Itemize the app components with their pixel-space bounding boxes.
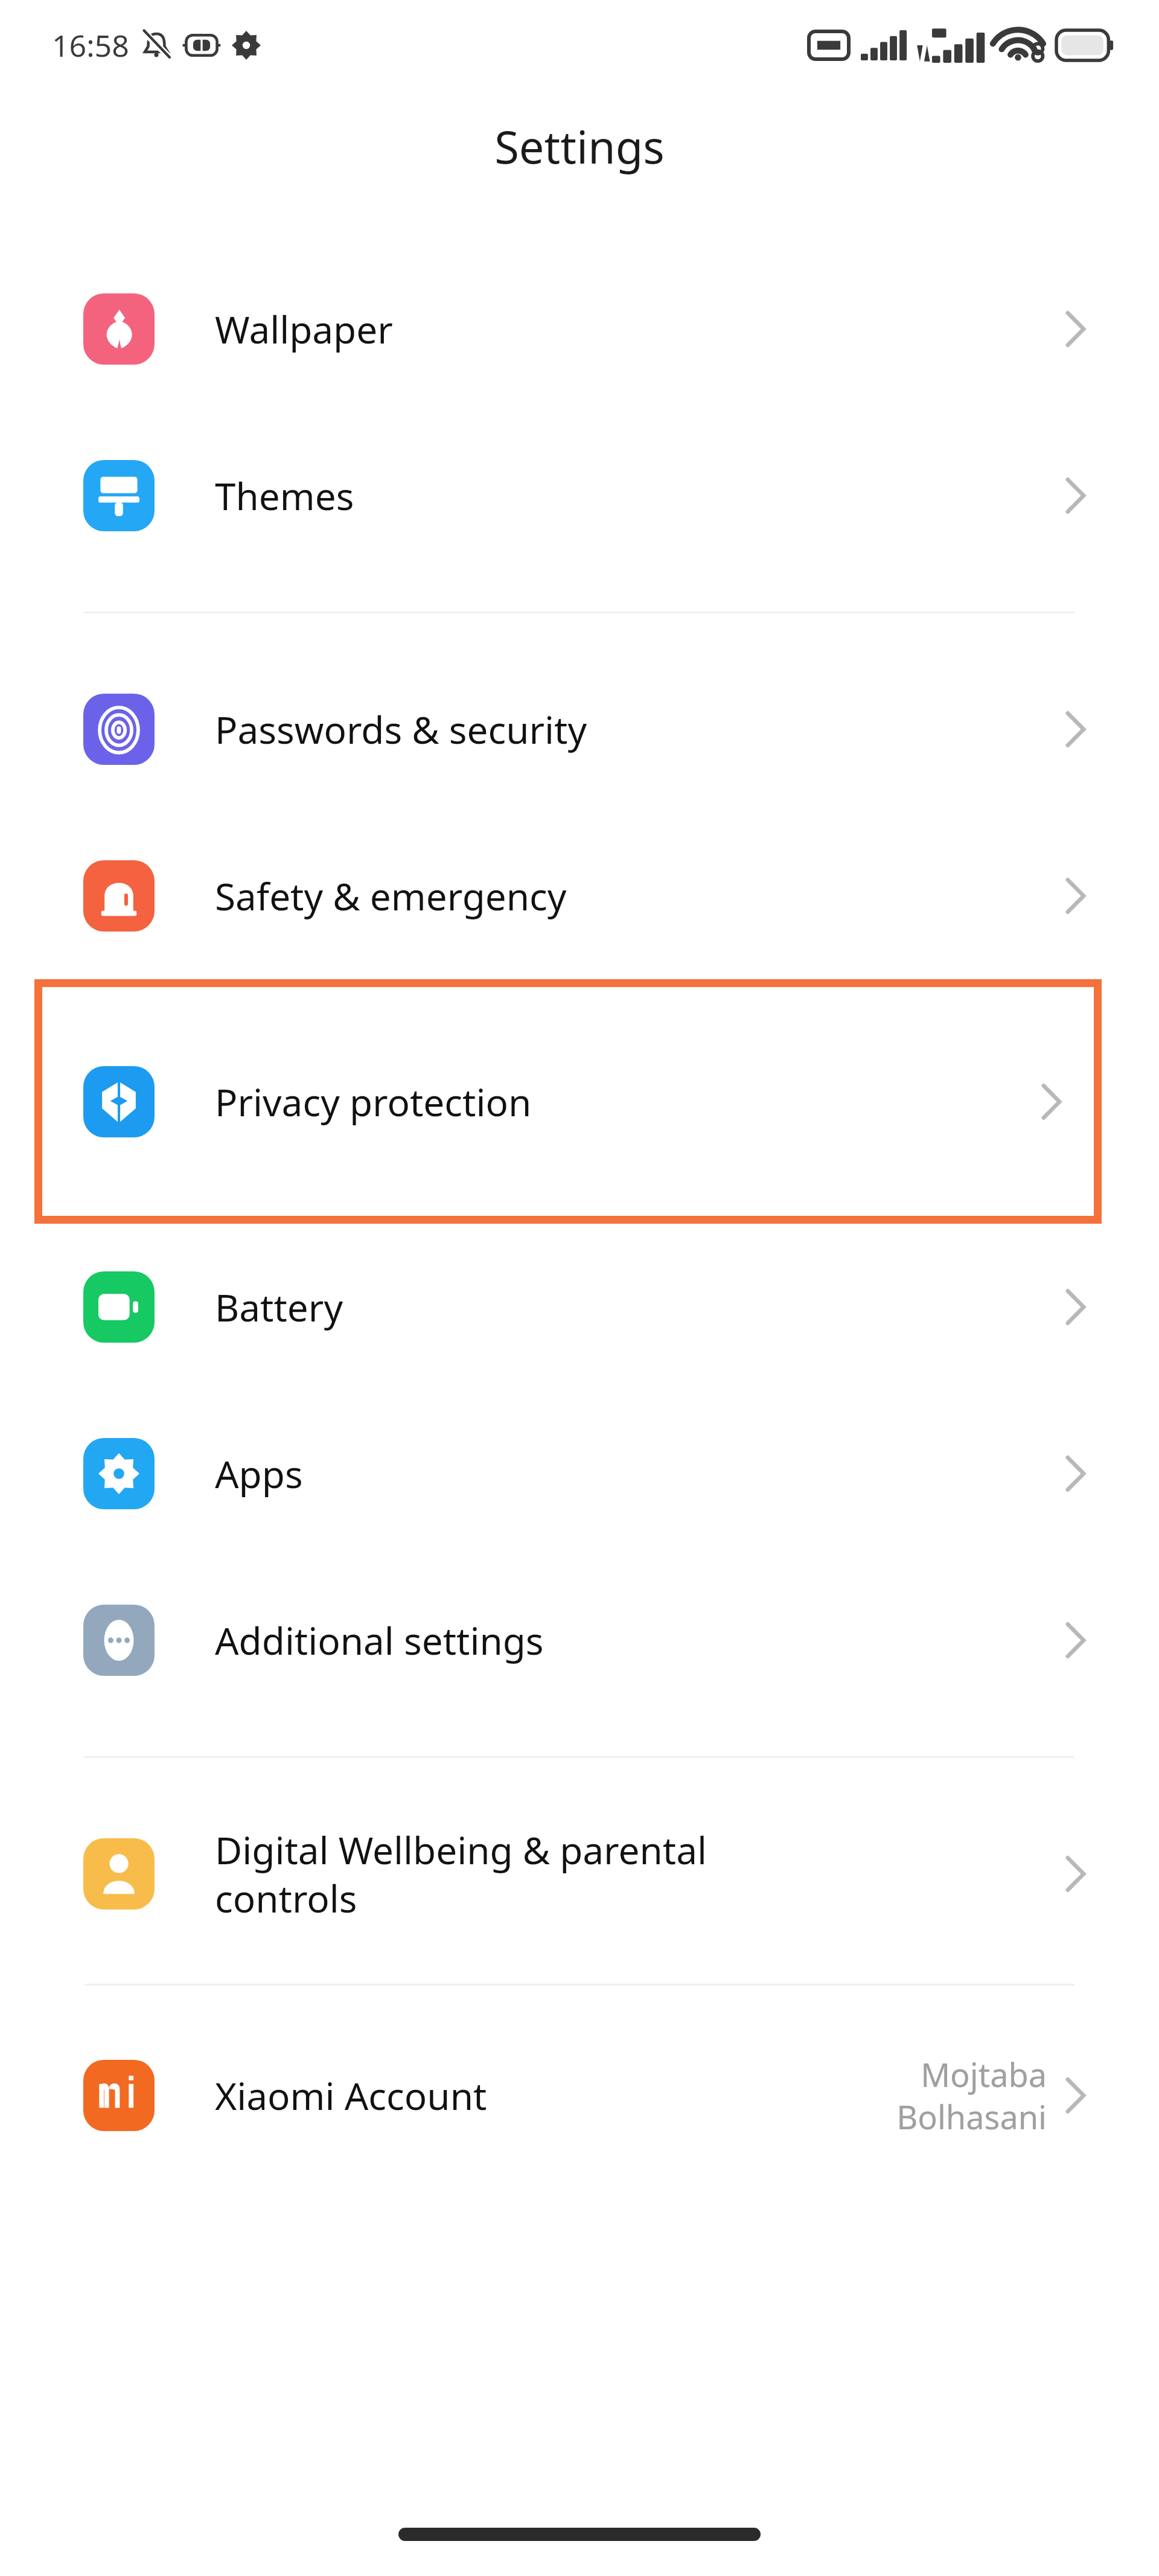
button[interactable]: Battery [0, 1224, 1159, 1390]
staticText: Safety & emergency [215, 871, 1062, 921]
button[interactable]: Safety & emergency [0, 813, 1159, 979]
staticText: Mojtaba Bolhasani [896, 2052, 1047, 2139]
staticText: Battery [215, 1282, 1062, 1332]
staticText: Apps [215, 1448, 1062, 1499]
staticText: 16:58 [52, 25, 129, 66]
staticText: Xiaomi Account [215, 2070, 896, 2121]
staticText: Wallpaper [215, 304, 1062, 354]
staticText: Additional settings [215, 1615, 1062, 1666]
staticText: Digital Wellbeing & parental controls [215, 1824, 1062, 1923]
button[interactable]: Wallpaper [0, 246, 1159, 412]
button[interactable]: Themes [0, 412, 1159, 579]
button[interactable]: Apps [0, 1390, 1159, 1557]
button[interactable]: Xiaomi Account [0, 2012, 1159, 2179]
button[interactable]: Digital Wellbeing & parental controls [0, 1791, 1159, 1957]
staticText: Settings [494, 116, 665, 177]
staticText: Privacy protection [215, 1076, 1038, 1127]
button[interactable]: Additional settings [0, 1557, 1159, 1724]
button[interactable]: Passwords & security [0, 646, 1159, 813]
button[interactable]: Privacy protection [0, 979, 1159, 1224]
staticText: Themes [215, 470, 1062, 521]
staticText: Passwords & security [215, 704, 1062, 755]
